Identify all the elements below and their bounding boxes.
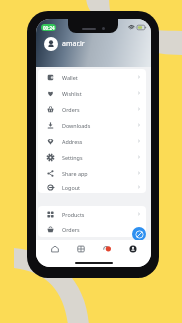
button[interactable]: Orders xyxy=(38,101,146,117)
button[interactable]: Products xyxy=(38,206,146,222)
button[interactable]: Profile xyxy=(125,241,140,256)
staticText: Wishlist xyxy=(62,90,82,97)
button[interactable]: Orders xyxy=(38,222,146,237)
staticText: Downloads xyxy=(62,122,91,129)
staticText: Wallet xyxy=(62,74,78,81)
button[interactable]: amar.ir xyxy=(36,36,151,52)
button[interactable]: Settings xyxy=(38,149,146,165)
staticText: Logout xyxy=(62,184,80,191)
button[interactable]: Address xyxy=(38,133,146,149)
staticText: amar.ir xyxy=(62,39,85,49)
button[interactable]: Share app xyxy=(38,165,146,181)
staticText: Settings xyxy=(62,154,83,161)
button[interactable]: Dashboard xyxy=(73,241,88,256)
staticText: Orders xyxy=(62,106,80,113)
staticText: Orders xyxy=(62,226,80,233)
staticText: Products xyxy=(62,211,85,218)
button[interactable]: Downloads xyxy=(38,117,146,133)
button[interactable]: Wallet xyxy=(38,69,146,85)
staticText: Address xyxy=(62,138,83,145)
button[interactable]: Cart xyxy=(99,241,114,256)
button[interactable]: Home xyxy=(47,241,62,256)
staticText: Share app xyxy=(62,170,88,177)
button[interactable]: Wishlist xyxy=(38,85,146,101)
button[interactable]: Logout xyxy=(38,181,146,193)
staticText: 00:24 xyxy=(43,25,55,31)
button[interactable]: Chat support xyxy=(132,227,146,241)
